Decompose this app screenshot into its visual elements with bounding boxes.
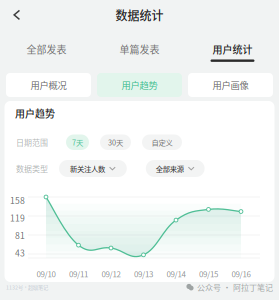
staticText: 09/12 [101,268,120,280]
button[interactable]: 自定义 [142,134,182,150]
staticText: 09/14 [166,268,185,280]
staticText: 用户趋势 [121,78,157,92]
staticText: 7天 [72,137,83,147]
staticText: 158 [10,194,25,206]
staticText: 公众号 · 阿拉丁笔记 [197,281,273,293]
button[interactable]: 新关注人数 [59,160,127,177]
staticText: 单篇发表 [119,42,159,56]
button[interactable]: 用户概况 [6,73,91,97]
button[interactable]: 单篇发表 [93,30,186,62]
staticText: 09/11 [69,268,88,280]
staticText: 119 [10,211,25,224]
button[interactable]: 用户趋势 [97,73,182,97]
button[interactable]: 全部发表 [0,30,93,62]
staticText: 43 [15,246,25,259]
staticText: 用户概况 [30,78,66,92]
staticText: 新关注人数 [70,163,105,174]
staticText: 1132号·超级笔记 [6,283,48,291]
staticText: 全部发表 [26,42,66,56]
staticText: 数据类型 [16,163,48,174]
staticText: 全部来源 [156,163,184,174]
button[interactable]: 全部来源 [146,160,205,177]
staticText: 日期范围 [16,136,48,148]
staticText: 09/10 [36,268,55,280]
staticText: 81 [15,229,25,241]
staticText: 09/16 [231,268,250,280]
button[interactable]: 用户统计 [186,30,279,62]
staticText: 用户统计 [212,42,252,56]
staticText: 用户趋势 [15,106,55,120]
button[interactable]: 7天 [66,134,89,150]
staticText: 09/13 [134,268,153,280]
staticText: 自定义 [151,137,172,147]
button[interactable]: 用户画像 [188,73,273,97]
button[interactable]: 30天 [100,134,131,150]
staticText: 数据统计 [115,6,163,24]
button[interactable]: 返回 [0,0,34,30]
staticText: 09/15 [199,268,218,280]
staticText: 30天 [108,137,123,147]
staticText: 用户画像 [212,78,248,92]
